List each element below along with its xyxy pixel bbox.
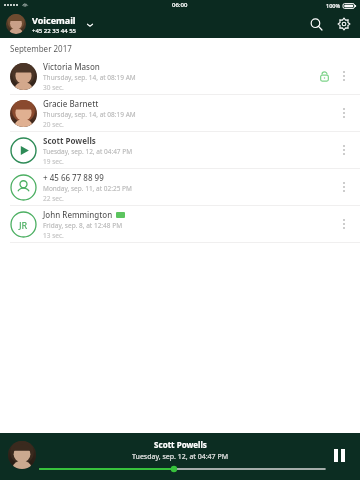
staticText: Scott Powells: [43, 135, 96, 146]
staticText: 30 sec.: [43, 83, 64, 92]
button[interactable]: More options: [334, 140, 354, 160]
staticText: Friday, sep. 8, at 12:48 PM: [43, 221, 123, 230]
button[interactable]: Voicemail: [32, 12, 94, 37]
staticText: 06:00: [172, 1, 188, 9]
staticText: +45 22 33 44 55: [32, 27, 76, 35]
staticText: John Remmington: [43, 209, 113, 220]
button[interactable]: More options: [334, 177, 354, 197]
staticText: Gracie Barnett: [43, 98, 99, 109]
button[interactable]: Scott Powells: [0, 132, 360, 169]
staticText: 19 sec.: [43, 157, 64, 166]
staticText: Scott Powells: [154, 439, 207, 450]
button[interactable]: More options: [334, 214, 354, 234]
button[interactable]: + 45 66 77 88 99: [0, 169, 360, 206]
button[interactable]: Pause: [328, 444, 350, 466]
staticText: 100%: [326, 2, 341, 9]
button[interactable]: Seek: [40, 466, 325, 472]
staticText: Tuesday, sep. 12, at 04:47 PM: [132, 452, 228, 462]
button[interactable]: Settings: [330, 10, 358, 38]
button[interactable]: Private: [314, 66, 334, 86]
staticText: Monday, sep. 11, at 02:25 PM: [43, 184, 132, 193]
staticText: Victoria Mason: [43, 61, 100, 72]
button[interactable]: JR: [0, 206, 360, 243]
button[interactable]: More options: [334, 103, 354, 123]
button[interactable]: Search: [302, 10, 330, 38]
staticText: + 45 66 77 88 99: [43, 172, 104, 183]
staticText: Thursday, sep. 14, at 08:19 AM: [43, 73, 136, 82]
staticText: 13 sec.: [43, 231, 64, 240]
staticText: 20 sec.: [43, 120, 64, 129]
staticText: Thursday, sep. 14, at 08:19 AM: [43, 110, 136, 119]
button[interactable]: Gracie Barnett: [0, 95, 360, 132]
staticText: JR: [19, 219, 28, 231]
button[interactable]: Victoria Mason: [0, 58, 360, 95]
button[interactable]: More options: [334, 66, 354, 86]
staticText: Voicemail: [32, 14, 76, 26]
staticText: September 2017: [10, 43, 72, 54]
staticText: Tuesday, sep. 12, at 04:47 PM: [43, 147, 133, 156]
staticText: 22 sec.: [43, 194, 64, 203]
